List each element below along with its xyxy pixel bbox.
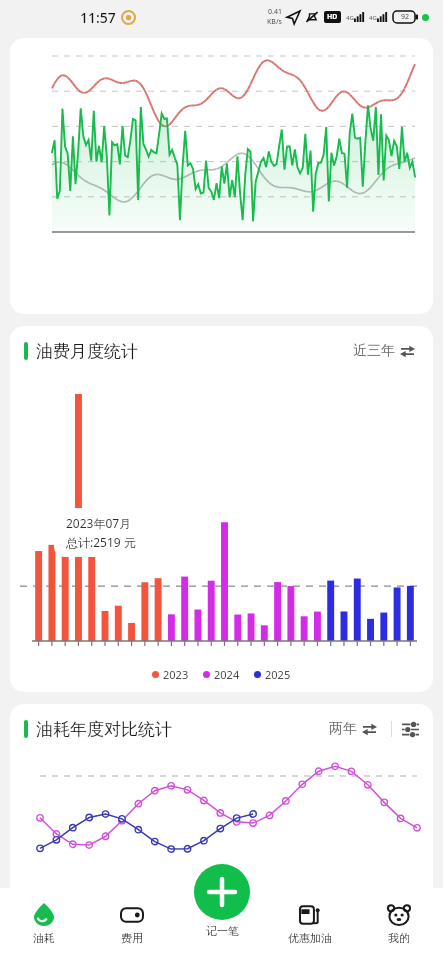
staticText: 0.41 (268, 7, 282, 17)
staticText: 记一笔 (206, 924, 239, 936)
staticText: 2025 (265, 667, 291, 682)
button[interactable]: 筛选 (402, 721, 419, 738)
staticText: 油耗 (33, 931, 55, 945)
staticText: 两年 (329, 720, 357, 738)
button[interactable]: 记一笔 (194, 864, 250, 920)
staticText: 92 (401, 12, 410, 22)
other: 切换 (400, 344, 415, 359)
staticText: KB/s (267, 17, 282, 27)
staticText: 费用 (121, 931, 143, 945)
staticText: 优惠加油 (288, 931, 332, 945)
staticText: 2023年07月 (66, 515, 132, 531)
button[interactable]: 我的 (354, 888, 443, 960)
staticText: 我的 (388, 931, 410, 945)
button[interactable]: 油耗 (0, 888, 88, 960)
staticText: 2024 (214, 667, 240, 682)
staticText: HD (327, 12, 338, 22)
staticText: 11:57 (80, 8, 116, 27)
button[interactable]: 费用 (88, 888, 176, 960)
button[interactable]: 优惠加油 (265, 888, 354, 960)
staticText: 总计:2519 元 (66, 534, 136, 550)
button[interactable]: 两年 (325, 716, 381, 742)
staticText: 油耗年度对比统计 (36, 719, 172, 740)
staticText: 4G (346, 14, 354, 22)
button[interactable]: 近三年 (349, 338, 419, 364)
staticText: 油费月度统计 (36, 341, 138, 362)
staticText: 近三年 (353, 342, 395, 360)
staticText: 2023 (163, 667, 189, 682)
staticText: 4G (369, 14, 377, 22)
other: 切换 (362, 722, 377, 737)
